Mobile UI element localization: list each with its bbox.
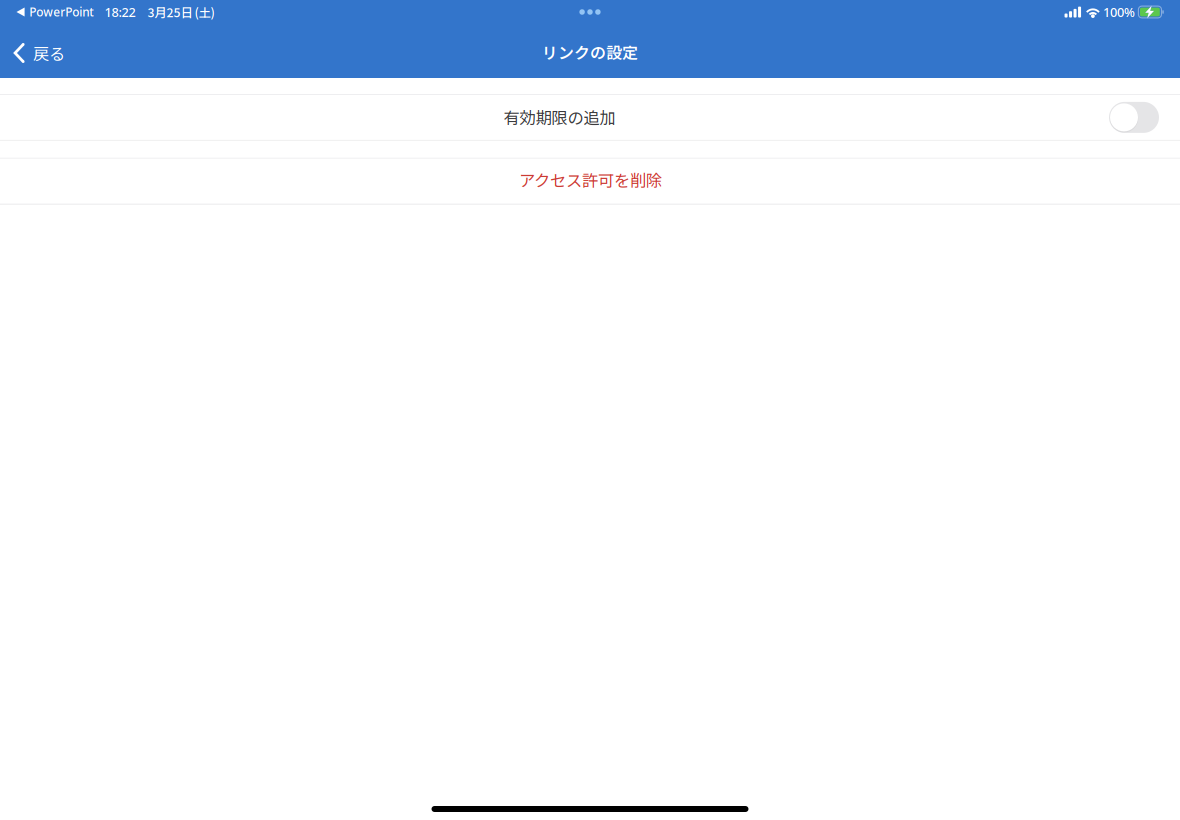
staticText: 有効期限の追加 xyxy=(503,105,615,129)
button[interactable]: 有効期限の追加, オフ xyxy=(1099,95,1180,140)
button[interactable]: アクセス許可を削除 xyxy=(0,159,1180,204)
staticText: アクセス許可を削除 xyxy=(519,168,662,191)
staticText: リンクの設定 xyxy=(542,40,638,63)
staticText: 18:22 xyxy=(104,3,135,21)
button[interactable]: 戻る xyxy=(0,26,77,76)
button[interactable]: 有効期限の追加 xyxy=(0,95,1099,140)
staticText: 戻る xyxy=(33,41,65,65)
staticText: 100% xyxy=(1103,3,1135,21)
staticText: PowerPoint xyxy=(29,4,94,20)
staticText: 3月25日 (土) xyxy=(147,3,214,21)
